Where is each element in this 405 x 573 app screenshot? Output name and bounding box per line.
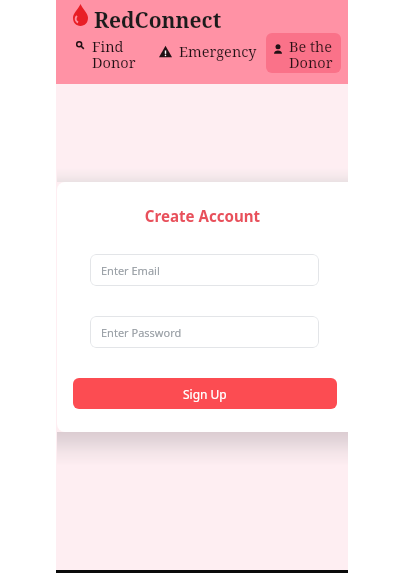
staticText: RedConnect [94, 6, 222, 35]
staticText: Sign Up [183, 386, 227, 402]
button[interactable]: Sign Up [73, 378, 337, 409]
staticText: Create Account [57, 206, 348, 227]
button[interactable]: Enter Email [90, 254, 319, 286]
button[interactable]: Enter Password [90, 316, 319, 348]
staticText: Be the Donor [289, 36, 333, 72]
button[interactable]: Find Donor [76, 33, 156, 73]
staticText: Enter Email [101, 263, 160, 278]
button[interactable]: Emergency [159, 31, 257, 71]
button[interactable]: Be the Donor [266, 33, 341, 73]
other: Emergency [159, 45, 172, 58]
staticText: Emergency [179, 41, 257, 61]
staticText: Find Donor [92, 36, 136, 72]
other: RedConnect logo [73, 4, 88, 26]
staticText: Enter Password [101, 325, 182, 340]
other: Find Donor [76, 41, 84, 49]
